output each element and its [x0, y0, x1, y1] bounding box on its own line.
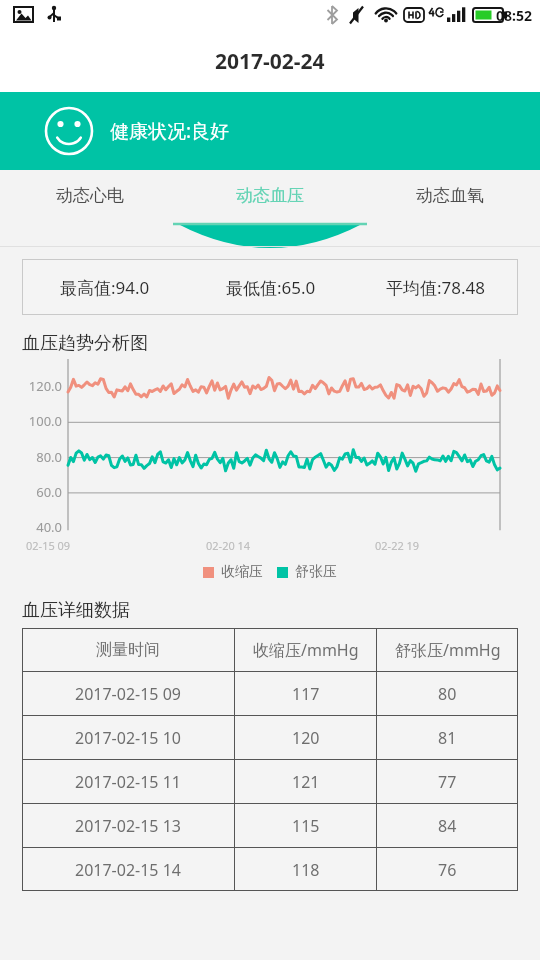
staticText: 84	[438, 815, 457, 837]
staticText: 动态血氧	[416, 185, 484, 206]
staticText: 40.0	[14, 518, 62, 536]
staticText: 2017-02-15 14	[75, 859, 181, 881]
staticText: 60.0	[14, 483, 62, 501]
staticText: 08:52	[496, 6, 532, 25]
staticText: 80	[438, 683, 457, 705]
staticText: 100.0	[14, 412, 62, 430]
staticText: 2017-02-15 10	[75, 727, 181, 749]
staticText: 收缩压	[221, 563, 263, 581]
staticText: 平均值:78.48	[386, 276, 486, 299]
other: Health status	[44, 106, 94, 156]
staticText: 舒张压	[295, 563, 337, 581]
staticText: 02-22 19	[375, 538, 420, 553]
button[interactable]: Health status	[0, 92, 540, 170]
staticText: 77	[438, 771, 457, 793]
staticText: 120.0	[14, 377, 62, 395]
staticText: 2017-02-15 13	[75, 815, 181, 837]
button[interactable]: 2017-02-15 10	[22, 716, 518, 759]
button[interactable]: 2017-02-15 09	[22, 672, 518, 715]
staticText: 115	[292, 815, 320, 837]
staticText: 收缩压/mmHg	[253, 639, 359, 661]
staticText: 动态血压	[236, 185, 304, 206]
staticText: 舒张压/mmHg	[395, 639, 501, 661]
staticText: 健康状况:良好	[110, 118, 230, 144]
staticText: 81	[438, 727, 457, 749]
staticText: 2017-02-15 09	[75, 683, 181, 705]
button[interactable]: 2017-02-15 11	[22, 760, 518, 803]
staticText: 最高值:94.0	[60, 276, 150, 299]
button[interactable]: 最高值:94.0	[22, 259, 518, 315]
staticText: 80.0	[14, 448, 62, 466]
button[interactable]: 测量时间	[22, 628, 518, 671]
button[interactable]: 动态心电	[0, 170, 180, 220]
staticText: 121	[292, 771, 320, 793]
button[interactable]: 动态血压	[180, 170, 360, 220]
staticText: 血压趋势分析图	[22, 332, 148, 355]
staticText: 02-15 09	[26, 538, 71, 553]
button[interactable]: 2017-02-15 14	[22, 848, 518, 891]
staticText: 2017-02-15 11	[75, 771, 181, 793]
staticText: 118	[292, 859, 320, 881]
staticText: 测量时间	[96, 640, 160, 660]
button[interactable]: 动态血氧	[360, 170, 540, 220]
button[interactable]: 2017-02-15 13	[22, 804, 518, 847]
staticText: 117	[292, 683, 320, 705]
staticText: 动态心电	[56, 185, 124, 206]
staticText: 120	[292, 727, 320, 749]
staticText: 最低值:65.0	[226, 276, 316, 299]
staticText: 76	[438, 859, 457, 881]
staticText: 02-20 14	[206, 538, 251, 553]
staticText: 2017-02-24	[215, 47, 325, 76]
staticText: 血压详细数据	[22, 599, 130, 622]
